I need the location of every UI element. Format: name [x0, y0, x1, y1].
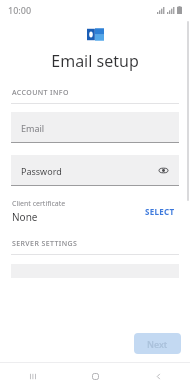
- staticText: Next: [147, 338, 168, 350]
- staticText: ACCOUNT INFO: [12, 88, 69, 98]
- button[interactable]: Next: [134, 333, 181, 354]
- staticText: None: [12, 210, 38, 224]
- staticText: Email: [21, 122, 45, 134]
- button[interactable]: Recents: [0, 363, 64, 390]
- staticText: Client certificate: [12, 199, 66, 209]
- staticText: SELECT: [145, 206, 175, 217]
- staticText: 10:00: [8, 4, 32, 16]
- button[interactable]: Home: [64, 363, 127, 390]
- staticText: Password: [21, 165, 62, 177]
- button[interactable]: SELECT: [142, 202, 178, 221]
- staticText: Email setup: [0, 50, 190, 72]
- button[interactable]: Client certificate: [12, 199, 178, 224]
- button[interactable]: Show password: [157, 164, 170, 177]
- button[interactable]: Password: [11, 155, 179, 186]
- button[interactable]: Email: [11, 112, 179, 143]
- staticText: SERVER SETTINGS: [12, 239, 78, 249]
